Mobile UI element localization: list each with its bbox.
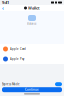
staticText: Continue (25, 88, 39, 91)
staticText: Express Mode (2, 82, 20, 86)
staticText: Apple Pay (10, 57, 24, 61)
button[interactable]: Express Mode (55, 82, 62, 86)
staticText: ‹ (2, 4, 4, 12)
staticText: Wallet (28, 5, 40, 11)
button[interactable]: Apple Pay (0, 54, 64, 64)
staticText: Balance (27, 22, 37, 25)
button[interactable]: Continue (2, 87, 62, 92)
button[interactable]: Apple Card (0, 44, 64, 54)
button[interactable]: Back (1, 5, 5, 10)
staticText: 9:41 (2, 0, 9, 5)
staticText: Apple Card (10, 47, 26, 51)
